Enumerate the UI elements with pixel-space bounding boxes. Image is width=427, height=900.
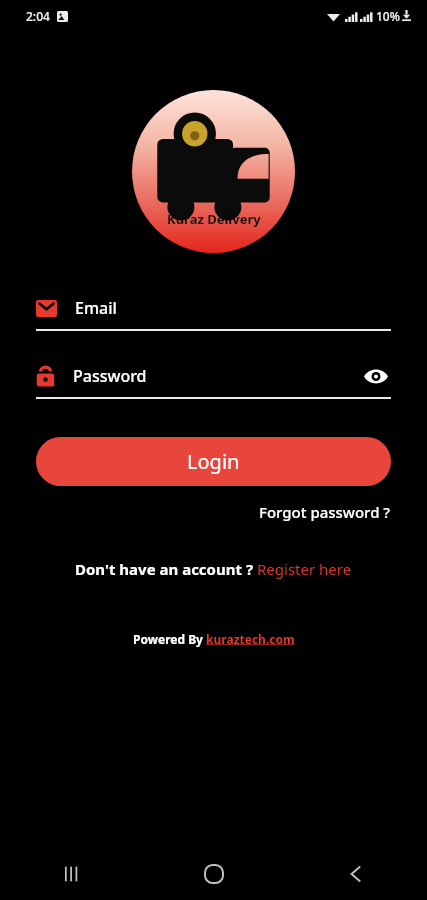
button[interactable]: Don't have an account ?	[75, 559, 352, 579]
button[interactable]: Password	[36, 361, 391, 399]
button[interactable]: Home	[143, 848, 285, 900]
staticText: Register here	[257, 559, 352, 579]
button[interactable]: Show password	[361, 361, 391, 391]
staticText: 2:04	[26, 8, 50, 24]
staticText: 10%	[376, 8, 400, 24]
staticText: Don't have an account ?	[75, 559, 257, 579]
button[interactable]: Login	[36, 437, 391, 486]
button[interactable]: Email	[36, 293, 391, 331]
staticText: Kuraz Delivery	[167, 210, 261, 228]
staticText: Email	[75, 297, 117, 319]
button[interactable]: Forgot password ?	[259, 502, 391, 522]
staticText: Powered By kuraztech.com	[133, 631, 295, 647]
button[interactable]: Back	[285, 848, 427, 900]
staticText: Forgot password ?	[259, 502, 391, 522]
button[interactable]: Recents	[0, 848, 143, 900]
button[interactable]: Powered By kuraztech.com	[133, 631, 295, 647]
staticText: Login	[187, 448, 240, 475]
staticText: Password	[73, 365, 147, 387]
